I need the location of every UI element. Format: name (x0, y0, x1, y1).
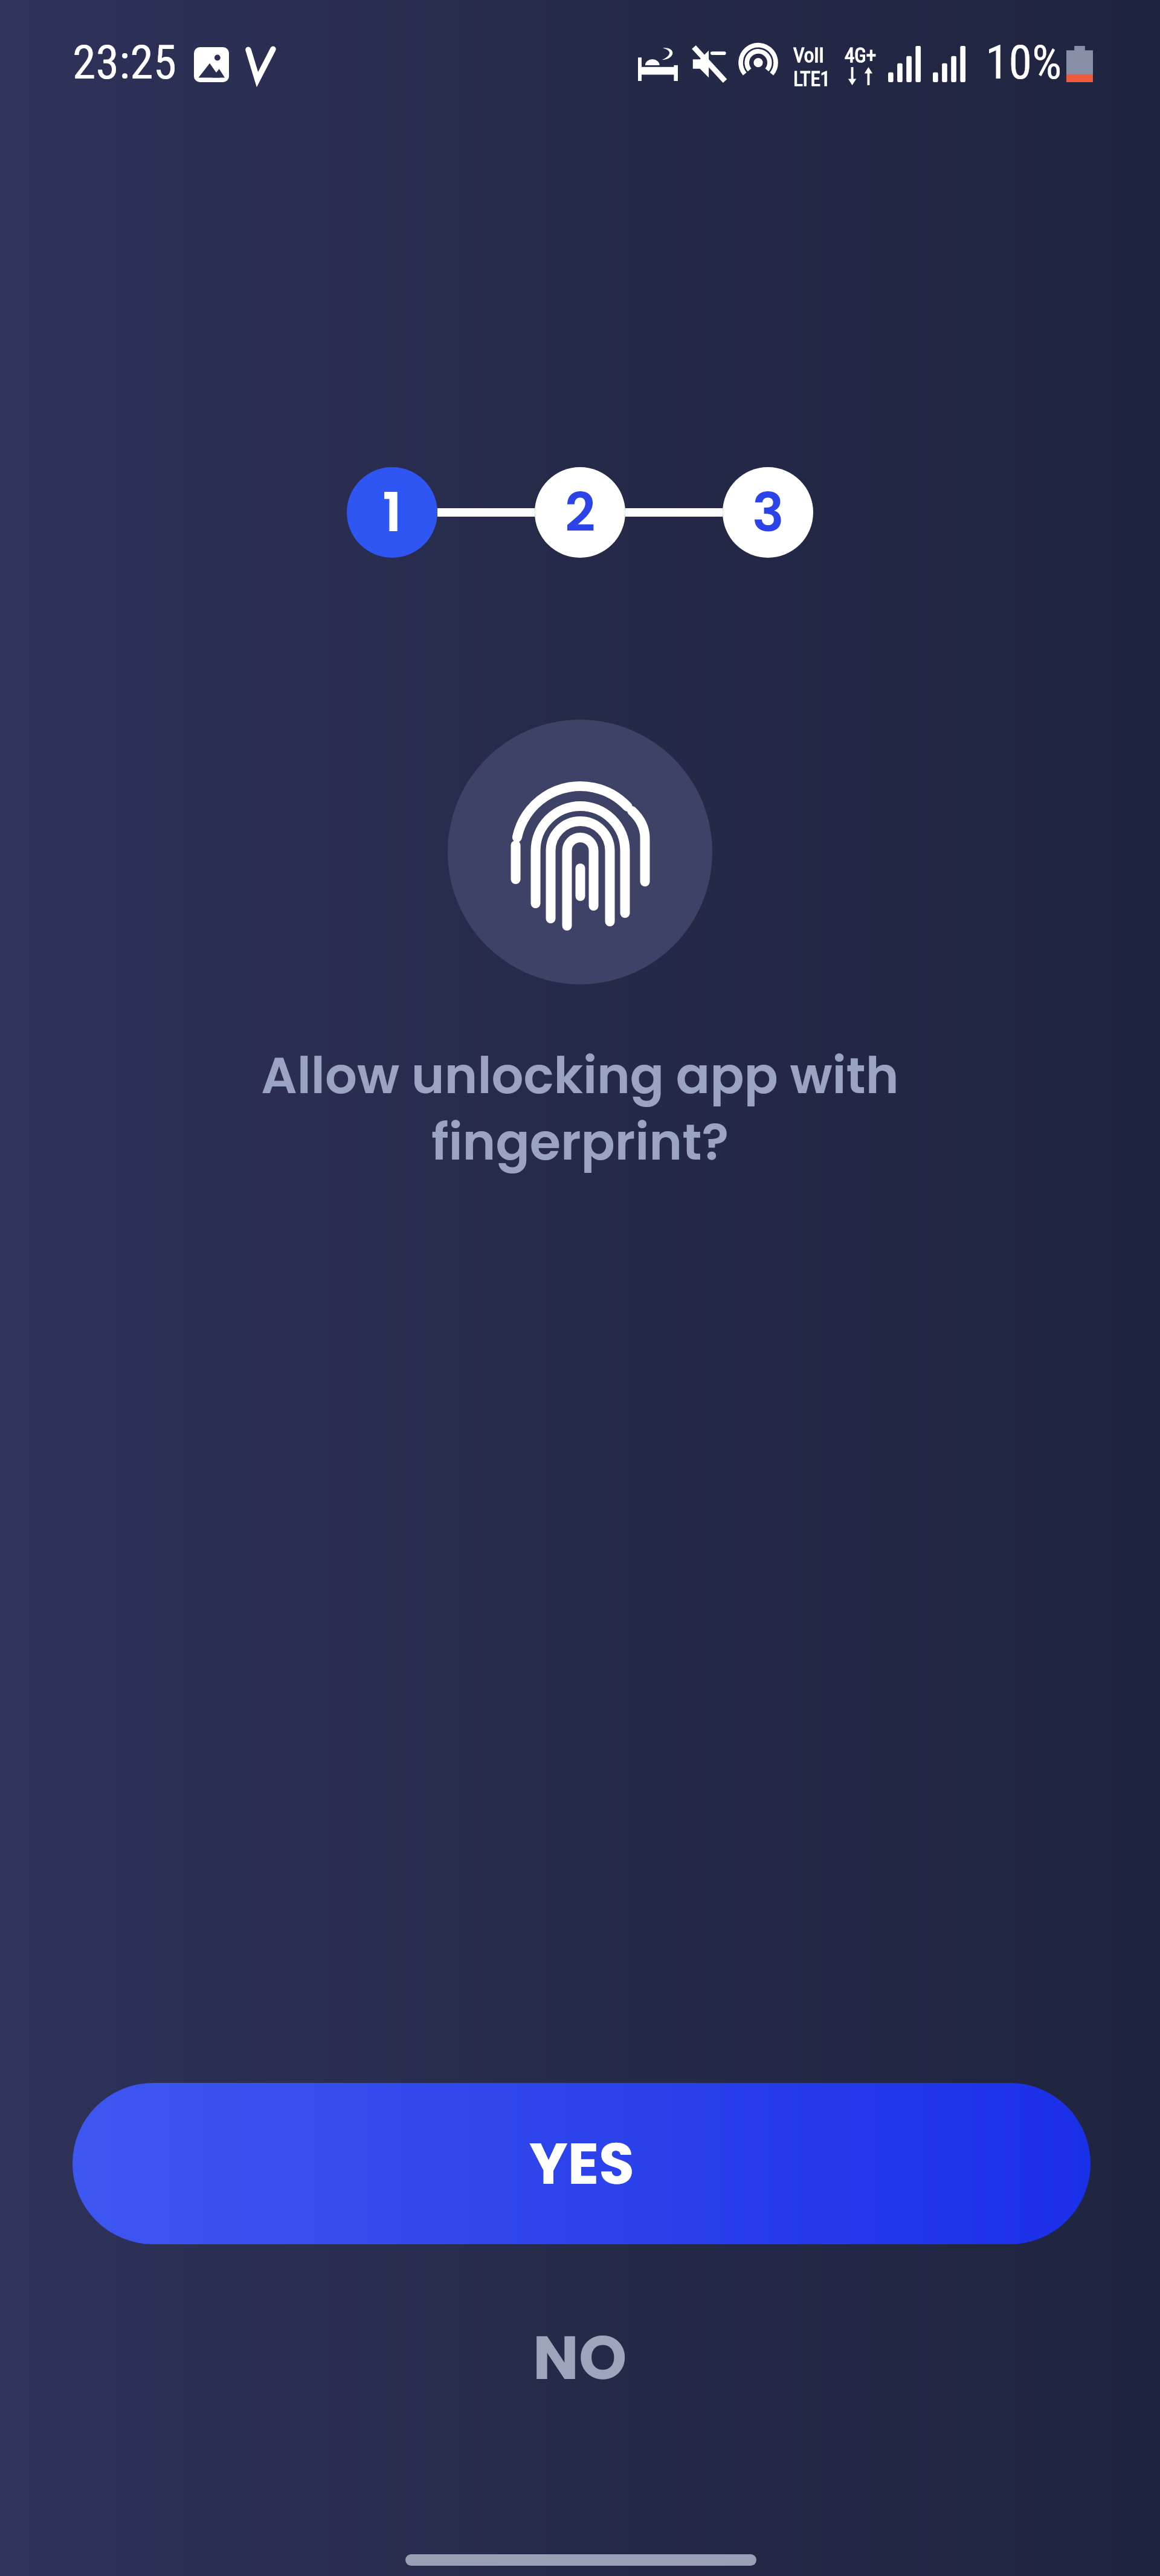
staticText: 2 (565, 476, 596, 550)
button[interactable]: 3 (723, 467, 813, 558)
staticText: 23:25 (72, 35, 177, 90)
button[interactable]: 1 (347, 467, 437, 558)
staticText: 4G+ (845, 44, 877, 67)
button[interactable]: NO (0, 2315, 1160, 2454)
staticText: NO (533, 2315, 627, 2400)
staticText: YES (529, 2123, 634, 2204)
other: Fingerprint (507, 778, 654, 931)
staticText: Allow unlocking app with fingerprint? (236, 1041, 924, 1177)
button[interactable]: YES (72, 2083, 1091, 2244)
staticText: VoII (793, 44, 824, 67)
staticText: 1 (382, 476, 402, 550)
staticText: 10% (985, 35, 1062, 90)
button[interactable]: 2 (535, 467, 625, 558)
staticText: 3 (752, 476, 784, 550)
staticText: LTE1 (793, 67, 831, 91)
